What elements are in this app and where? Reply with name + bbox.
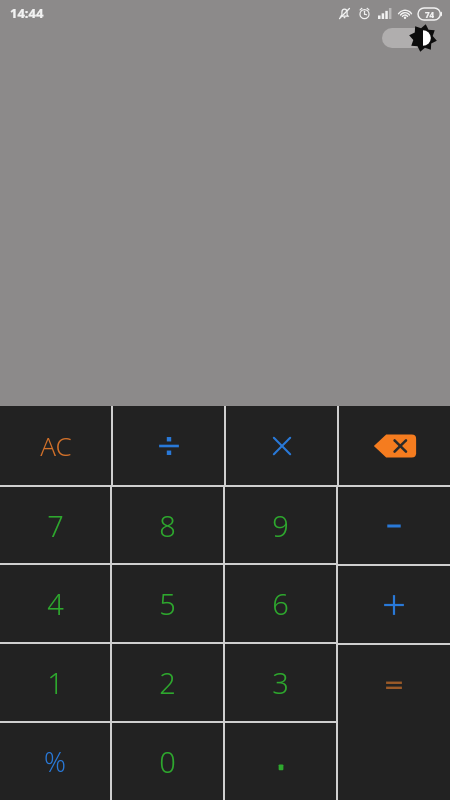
button[interactable]: Decimal point (225, 723, 336, 800)
button[interactable]: Equals (338, 645, 450, 800)
staticText: 6 (272, 584, 289, 623)
button[interactable]: 0 (112, 723, 223, 800)
staticText: 5 (159, 584, 176, 623)
button[interactable]: 3 (225, 644, 336, 721)
button[interactable]: All clear (0, 406, 111, 485)
button[interactable]: 1 (0, 644, 110, 721)
staticText: 14:44 (10, 4, 44, 22)
button[interactable]: 4 (0, 565, 110, 642)
button[interactable]: Percent (0, 723, 110, 800)
staticText: 3 (272, 663, 289, 702)
button[interactable]: Minus (338, 487, 450, 564)
button[interactable]: 9 (225, 487, 336, 563)
staticText: 9 (272, 506, 289, 545)
staticText: 0 (159, 742, 176, 781)
staticText: 2 (159, 663, 176, 702)
button[interactable]: 5 (112, 565, 223, 642)
staticText: 7 (47, 506, 64, 545)
button[interactable]: Toggle brightness (380, 22, 438, 54)
staticText: 8 (159, 506, 176, 545)
button[interactable]: Divide (113, 406, 224, 485)
staticText: 4 (47, 584, 64, 623)
staticText: % (44, 743, 66, 780)
button[interactable]: Multiply (226, 406, 337, 485)
staticText: 74 (425, 9, 435, 20)
button[interactable]: 6 (225, 565, 336, 642)
staticText: AC (40, 428, 72, 463)
button[interactable]: 7 (0, 487, 110, 563)
button[interactable]: Plus (338, 566, 450, 643)
button[interactable]: 8 (112, 487, 223, 563)
button[interactable]: Backspace (339, 406, 450, 485)
staticText: 1 (47, 663, 64, 702)
button[interactable]: 2 (112, 644, 223, 721)
